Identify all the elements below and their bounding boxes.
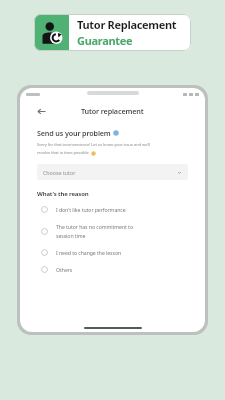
button[interactable]: I don't like tutor performance bbox=[37, 206, 188, 213]
button[interactable]: Choose tutor bbox=[37, 164, 188, 180]
button[interactable]: Back bbox=[37, 107, 46, 116]
button[interactable]: Tutor replacement guarantee bbox=[34, 14, 191, 51]
button[interactable]: Others bbox=[37, 266, 188, 273]
staticText: Guarantee bbox=[77, 33, 133, 48]
staticText: session time bbox=[56, 232, 86, 239]
staticText: Sorry for that inconvenience! Let us kno… bbox=[37, 142, 151, 148]
other: Tutor replacement guarantee bbox=[34, 14, 69, 51]
button[interactable]: I need to change the lesson bbox=[37, 249, 188, 256]
staticText: Others bbox=[56, 266, 73, 273]
staticText: I don't like tutor performance bbox=[56, 206, 126, 213]
staticText: The tutor has no commitment to bbox=[56, 223, 133, 230]
button[interactable]: The tutor has no commitment to bbox=[37, 223, 188, 239]
staticText: What's the reason bbox=[37, 190, 89, 198]
staticText: Choose tutor bbox=[43, 169, 177, 176]
staticText: Tutor Replacement bbox=[77, 17, 177, 32]
staticText: Tutor replacement bbox=[81, 106, 144, 116]
staticText: Send us your problem bbox=[37, 128, 111, 138]
staticText: resolve that in time possible bbox=[37, 150, 89, 156]
staticText: I need to change the lesson bbox=[56, 249, 122, 256]
